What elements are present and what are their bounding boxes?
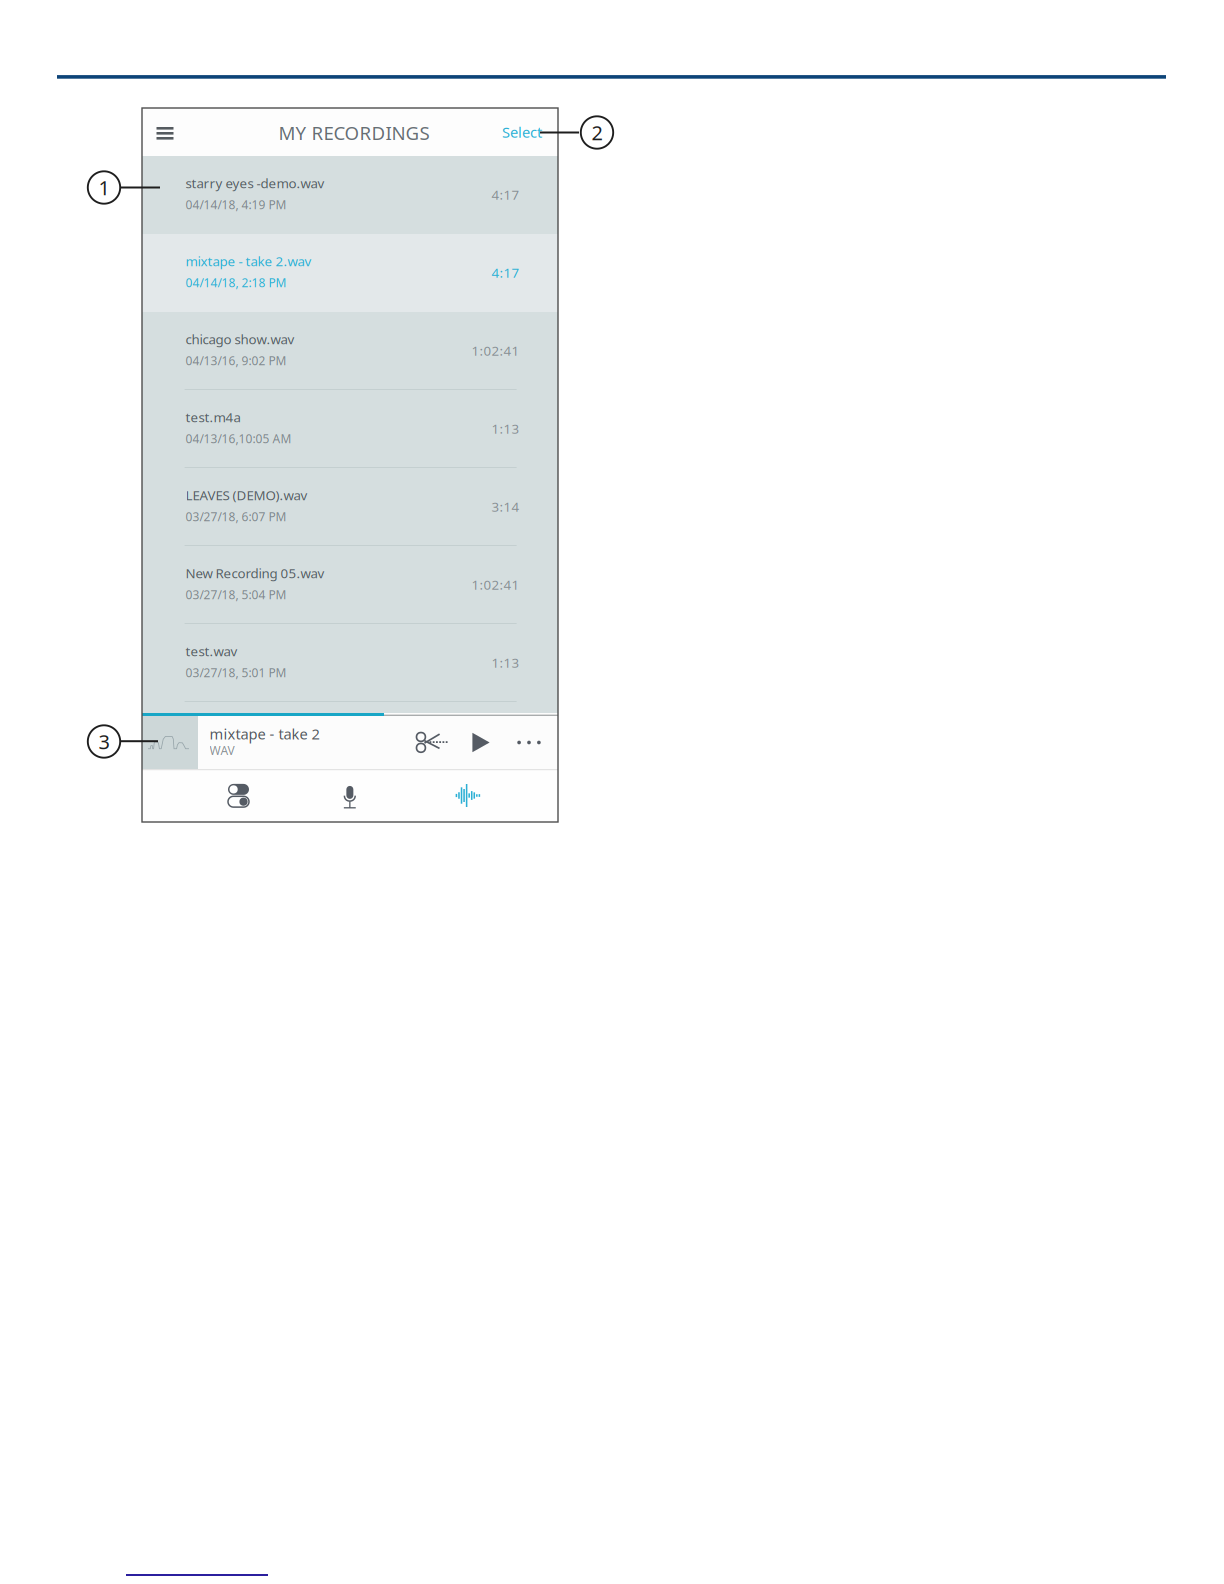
button[interactable]: starry eyes -demo.wav [142,156,558,234]
staticText: LEAVES (DEMO).wav [185,486,307,504]
staticText: mixtape - take 2 [209,724,319,743]
staticText: test.wav [185,642,237,660]
staticText: 04/14/18, 4:19 PM [185,196,286,212]
button[interactable]: mixtape - take 2.wav [142,234,558,312]
staticText: 03/27/18, 5:01 PM [185,664,286,680]
staticText: 03/27/18, 6:07 PM [185,508,286,524]
staticText: 1:13 [491,420,519,437]
button[interactable]: chicago show.wav [142,312,558,390]
staticText: mixtape - take 2.wav [185,252,311,270]
button[interactable]: Select [502,108,558,156]
button[interactable]: Menu [142,108,188,156]
button[interactable]: Trim [408,716,454,769]
staticText: 3:14 [491,498,519,515]
staticText: WAV [209,742,234,758]
staticText: 1:13 [491,654,519,671]
button[interactable]: LEAVES (DEMO).wav [142,468,558,546]
staticText: 04/13/16, 9:02 PM [185,352,286,368]
staticText: starry eyes -demo.wav [185,174,324,192]
button[interactable]: test.wav [142,624,558,702]
button[interactable]: Settings [211,769,265,822]
button[interactable]: More options [506,716,552,769]
staticText: test.m4a [185,408,240,426]
staticText: Select [502,122,542,142]
staticText: 04/14/18, 2:18 PM [185,274,286,290]
staticText: chicago show.wav [185,330,294,348]
button[interactable]: test.m4a [142,390,558,468]
staticText: 4:17 [491,264,519,281]
button[interactable]: Record [323,765,377,818]
staticText: MY RECORDINGS [278,120,429,145]
staticText: 03/27/18, 5:04 PM [185,586,286,602]
staticText: 4:17 [491,186,519,203]
staticText: 04/13/16,10:05 AM [185,430,291,446]
button[interactable]: New Recording 05.wav [142,546,558,624]
staticText: 2 [591,119,602,146]
staticText: 1:02:41 [471,342,519,359]
staticText: 3 [98,728,109,755]
staticText: New Recording 05.wav [185,564,324,582]
staticText: 1 [98,174,109,201]
button[interactable]: Recordings [441,769,495,822]
staticText: 1:02:41 [471,576,519,593]
button[interactable]: Play [459,716,503,769]
